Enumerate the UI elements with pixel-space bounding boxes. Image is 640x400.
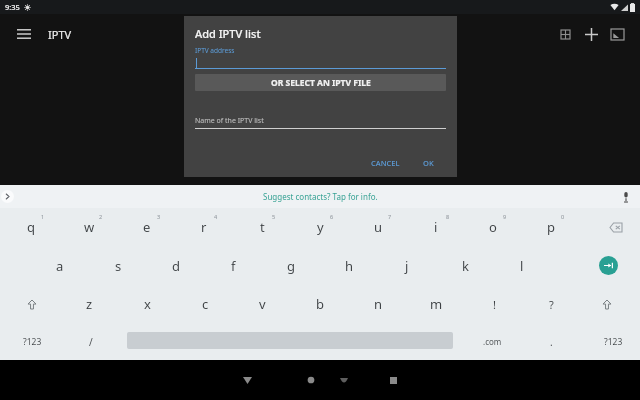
button[interactable]: . — [537, 323, 565, 360]
staticText: 9:35 — [5, 2, 20, 12]
staticText: h — [345, 257, 354, 275]
button[interactable]: ! — [470, 285, 518, 323]
button[interactable]: r — [180, 208, 228, 246]
button[interactable]: Enter — [599, 256, 618, 275]
button[interactable]: e — [123, 208, 171, 246]
button[interactable]: k — [441, 246, 489, 285]
staticText: 8 — [446, 213, 450, 220]
button[interactable]: Open navigation menu — [10, 20, 38, 48]
staticText: ? — [549, 297, 554, 312]
staticText: OK — [423, 158, 434, 168]
button[interactable]: Expand suggestions — [1, 190, 14, 203]
button[interactable]: t — [238, 208, 286, 246]
button[interactable]: g — [267, 246, 315, 285]
button[interactable]: w — [65, 208, 113, 246]
staticText: 9 — [503, 213, 507, 220]
staticText: 5 — [272, 213, 276, 220]
button[interactable]: i — [412, 208, 460, 246]
staticText: s — [115, 257, 122, 275]
staticText: j — [405, 257, 409, 275]
button[interactable]: Shift — [18, 285, 46, 323]
staticText: . — [550, 335, 553, 349]
staticText: c — [202, 295, 209, 313]
button[interactable]: p — [527, 208, 575, 246]
staticText: i — [434, 218, 438, 236]
button[interactable]: View mode — [552, 21, 578, 47]
staticText: Add IPTV list — [195, 26, 261, 41]
button[interactable]: .com — [472, 323, 512, 360]
staticText: m — [430, 295, 443, 313]
button[interactable]: Suggest contacts? Tap for info. — [263, 191, 378, 202]
button[interactable]: / — [76, 323, 106, 360]
staticText: ?123 — [604, 336, 623, 348]
button[interactable]: Home — [298, 367, 324, 393]
staticText: ! — [493, 297, 496, 312]
staticText: IPTV — [48, 27, 72, 42]
button[interactable]: j — [383, 246, 431, 285]
button[interactable]: Assistant — [334, 370, 354, 390]
staticText: p — [547, 218, 555, 236]
staticText: a — [56, 257, 64, 275]
staticText: v — [259, 295, 266, 313]
staticText: k — [462, 257, 469, 275]
button[interactable]: Shift — [593, 285, 621, 323]
button[interactable]: ?123 — [594, 323, 632, 360]
button[interactable]: Recent apps — [380, 367, 406, 393]
button[interactable]: d — [152, 246, 200, 285]
button[interactable]: Backspace — [606, 217, 626, 237]
staticText: q — [27, 218, 35, 236]
button[interactable]: OK — [416, 155, 441, 171]
staticText: 0 — [561, 213, 565, 220]
staticText: t — [260, 218, 265, 236]
staticText: b — [316, 295, 324, 313]
button[interactable]: q — [7, 208, 55, 246]
button[interactable]: v — [238, 285, 286, 323]
staticText: 1 — [41, 213, 45, 220]
staticText: n — [374, 295, 383, 313]
button[interactable]: Hide keyboard — [234, 367, 260, 393]
staticText: .com — [483, 336, 502, 347]
button[interactable]: CANCEL — [364, 155, 407, 171]
staticText: d — [172, 257, 180, 275]
button[interactable]: h — [325, 246, 373, 285]
button[interactable]: Add IPTV list — [578, 21, 604, 47]
button[interactable]: Cast — [604, 21, 630, 47]
staticText: ?123 — [23, 336, 42, 348]
button[interactable]: x — [123, 285, 171, 323]
button[interactable]: a — [36, 246, 84, 285]
staticText: w — [84, 218, 95, 236]
staticText: y — [317, 218, 324, 236]
staticText: x — [144, 295, 151, 313]
button[interactable]: ? — [527, 285, 575, 323]
staticText: r — [201, 218, 207, 236]
staticText: / — [89, 335, 93, 349]
staticText: 7 — [388, 213, 392, 220]
button[interactable]: y — [296, 208, 344, 246]
button[interactable]: l — [498, 246, 546, 285]
staticText: o — [489, 218, 497, 236]
button[interactable]: o — [469, 208, 517, 246]
button[interactable]: Voice input — [619, 190, 633, 204]
staticText: OR SELECT AN IPTV FILE — [271, 77, 371, 89]
staticText: 4 — [214, 213, 218, 220]
button[interactable]: u — [354, 208, 402, 246]
button[interactable]: z — [65, 285, 113, 323]
button[interactable]: s — [94, 246, 142, 285]
button[interactable]: f — [209, 246, 257, 285]
button[interactable]: ?123 — [13, 323, 51, 360]
button[interactable]: m — [412, 285, 460, 323]
button[interactable]: b — [296, 285, 344, 323]
staticText: 6 — [330, 213, 334, 220]
button[interactable]: n — [354, 285, 402, 323]
staticText: Name of the IPTV list — [195, 116, 264, 126]
staticText: CANCEL — [371, 158, 400, 168]
staticText: 2 — [99, 213, 103, 220]
staticText: l — [520, 257, 524, 275]
staticText: IPTV address — [195, 46, 235, 55]
button[interactable]: c — [181, 285, 229, 323]
button[interactable]: OR SELECT AN IPTV FILE — [195, 74, 446, 91]
staticText: z — [86, 295, 93, 313]
staticText: e — [143, 218, 151, 236]
staticText: 3 — [157, 213, 161, 220]
